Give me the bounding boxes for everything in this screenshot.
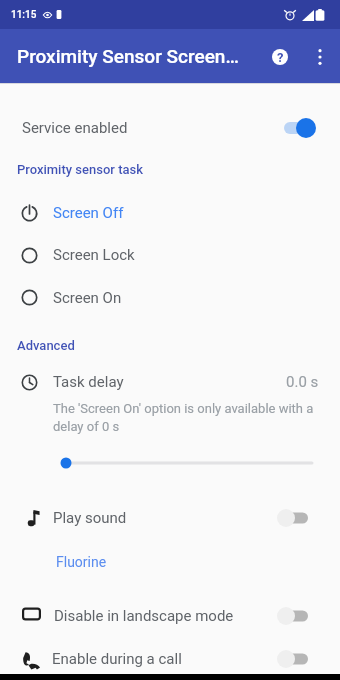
button[interactable]: Screen Lock (0, 234, 340, 276)
staticText: Proximity Sensor Screen… (17, 45, 249, 67)
staticText: ? (277, 50, 284, 65)
button[interactable]: Fluorine (0, 554, 340, 570)
staticText: Screen On (53, 289, 122, 307)
button[interactable]: Enable during a call (0, 637, 340, 680)
button[interactable]: Task delay (0, 369, 340, 395)
button[interactable]: Help (260, 37, 300, 77)
staticText: Screen Off (53, 204, 124, 222)
button[interactable]: More options (300, 37, 340, 77)
staticText: The 'Screen On' option is only available… (53, 401, 324, 434)
button[interactable]: Play sound (0, 504, 340, 532)
staticText: Play sound (53, 509, 127, 527)
staticText: Proximity sensor task (17, 162, 144, 177)
staticText: Task delay (53, 373, 124, 391)
button[interactable]: Screen On (0, 276, 340, 319)
button[interactable]: Service enabled (0, 104, 340, 152)
staticText: Service enabled (22, 119, 128, 137)
button[interactable]: Disable in landscape mode (0, 594, 340, 637)
staticText: 0.0 s (286, 373, 319, 391)
button[interactable]: Screen Off (0, 192, 340, 234)
staticText: Advanced (17, 338, 75, 353)
staticText: Screen Lock (53, 246, 135, 264)
staticText: Enable during a call (52, 650, 182, 668)
button[interactable]: Task delay slider (0, 454, 340, 472)
staticText: Disable in landscape mode (54, 607, 234, 625)
staticText: Fluorine (56, 554, 107, 570)
staticText: 11:15 (11, 9, 37, 21)
